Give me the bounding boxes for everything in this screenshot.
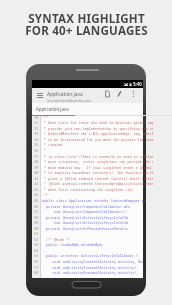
- staticText: new: [42, 220, 63, 225]
- staticText: void: [42, 265, 63, 270]
- staticText: ArrayList<OnProvideAssistDataLis: [63, 226, 129, 231]
- staticText: 35: [34, 142, 39, 147]
- staticText: 38: [34, 159, 39, 164]
- staticText: 57: [34, 265, 39, 270]
- staticText: * when first constructing the singleton.…: [42, 187, 134, 192]
- staticText: 43: [34, 187, 39, 192]
- staticText: * most situations, static singletons can…: [42, 159, 153, 164]
- staticText: void: [42, 259, 63, 264]
- staticText: * provide your own implementation by spe…: [42, 126, 153, 131]
- staticText: SYNTAX HIGHLIGHT FOR 40+ LANGUAGES: [25, 11, 148, 38]
- staticText: *: [42, 148, 47, 153]
- staticText: 31: [34, 120, 39, 125]
- staticText: 41: [34, 176, 39, 181]
- staticText: Application.java: [47, 91, 83, 98]
- staticText: 34: [34, 137, 39, 142]
- staticText: * AndroidManifest.xml's &lt;application&…: [42, 131, 153, 136]
- staticText: 44: [34, 192, 39, 197]
- staticText: LoadedApk mLoadedApk;: [61, 242, 104, 247]
- staticText: 58: [34, 270, 39, 275]
- staticText: 50: [34, 226, 39, 231]
- staticText: * {@link android.content.Context#getAppl…: [42, 181, 153, 186]
- staticText: 56: [34, 259, 39, 264]
- staticText: ArrayList<ComponentCallbacks>();: [63, 209, 129, 214]
- staticText: ArrayList<ComponentCallbacks> mCo: [63, 204, 131, 209]
- staticText: * to be instantiated for you when the pr…: [42, 137, 153, 142]
- staticText: /** @hide */: [42, 237, 71, 242]
- staticText: 40: [34, 170, 39, 175]
- staticText: new: [42, 209, 63, 214]
- staticText: 42: [34, 181, 39, 186]
- staticText: 52: [34, 237, 39, 242]
- staticText: * <p class="note">There is normally no n…: [42, 154, 153, 159]
- staticText: private: [42, 204, 63, 209]
- staticText: onActivityStarted(Activity activity);: [63, 265, 139, 270]
- staticText: 45: [34, 198, 39, 203]
- staticText: /**: [42, 115, 49, 120]
- staticText: public interface: [42, 253, 81, 258]
- staticText: 5:46: [133, 81, 142, 87]
- staticText: * created.: [42, 142, 65, 147]
- staticText: 36: [34, 148, 39, 153]
- staticText: ArrayList<ActivityLifecycleCallb: [63, 215, 129, 220]
- staticText: */: [42, 192, 49, 197]
- staticText: ContextWrapper im: [111, 198, 146, 203]
- staticText: 51: [34, 231, 39, 236]
- staticText: /storage/sdcard/Application.java: [47, 99, 92, 103]
- button[interactable]: Open file: [102, 88, 113, 99]
- staticText: 37: [34, 154, 39, 159]
- staticText: 46: [34, 204, 39, 209]
- button[interactable]: Edit: [114, 88, 125, 99]
- staticText: private: [42, 226, 63, 231]
- staticText: private: [42, 215, 63, 220]
- staticText: 48: [34, 215, 39, 220]
- staticText: void: [42, 270, 63, 275]
- staticText: Application: [69, 198, 94, 203]
- button[interactable]: Navigation menu: [34, 90, 45, 101]
- staticText: * Base class for those who need to maint…: [42, 120, 153, 125]
- staticText: 55: [34, 253, 39, 258]
- staticText: public: [42, 242, 61, 247]
- staticText: 30: [34, 115, 39, 120]
- staticText: 33: [34, 131, 39, 136]
- staticText: extends: [94, 198, 111, 203]
- staticText: * given a {@link android.content.Context…: [42, 176, 153, 181]
- staticText: ActivityLifecycleCallbacks {: [81, 253, 138, 258]
- staticText: onActivityResumed(Activity activity);: [63, 270, 139, 275]
- staticText: ArrayList<ActivityLifecycleCallb: [63, 220, 129, 225]
- staticText: 32: [34, 126, 39, 131]
- button[interactable]: More options: [128, 88, 139, 99]
- staticText: * to register broadcast receivers), the …: [42, 170, 153, 175]
- staticText: 53: [34, 242, 39, 247]
- staticText: * more modular way. If your singleton ne…: [42, 165, 153, 170]
- staticText: 47: [34, 209, 39, 214]
- staticText: 39: [34, 165, 39, 170]
- staticText: onActivityCreated(Activity activity, Bun: [63, 259, 145, 264]
- button[interactable]: Application.java: [32, 103, 75, 116]
- staticText: 54: [34, 248, 39, 253]
- staticText: public class: [42, 198, 69, 203]
- staticText: Application.java: [36, 106, 69, 112]
- staticText: 49: [34, 220, 39, 225]
